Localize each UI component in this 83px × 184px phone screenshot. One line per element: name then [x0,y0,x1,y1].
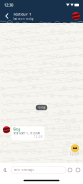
button[interactable]: Profile [72,12,83,20]
staticText: Today [38,106,45,109]
staticText: last seen today [13,17,33,21]
staticText: Test user 1, it is OK [13,131,40,135]
staticText: 12:28 [34,135,43,139]
button[interactable]: Back [1,9,13,22]
staticText: 12:29 [70,152,79,156]
button[interactable]: Emoji [66,163,74,177]
button[interactable]: Attach [0,163,11,177]
staticText: Write a message [13,168,34,172]
staticText: 12:30 [4,2,13,8]
staticText: Greg [13,128,20,131]
button[interactable]: Testeur 1 [13,11,72,21]
staticText: Testeur 1 [13,11,31,17]
button[interactable]: Camera [74,163,82,177]
button[interactable]: Write a message [11,166,66,173]
